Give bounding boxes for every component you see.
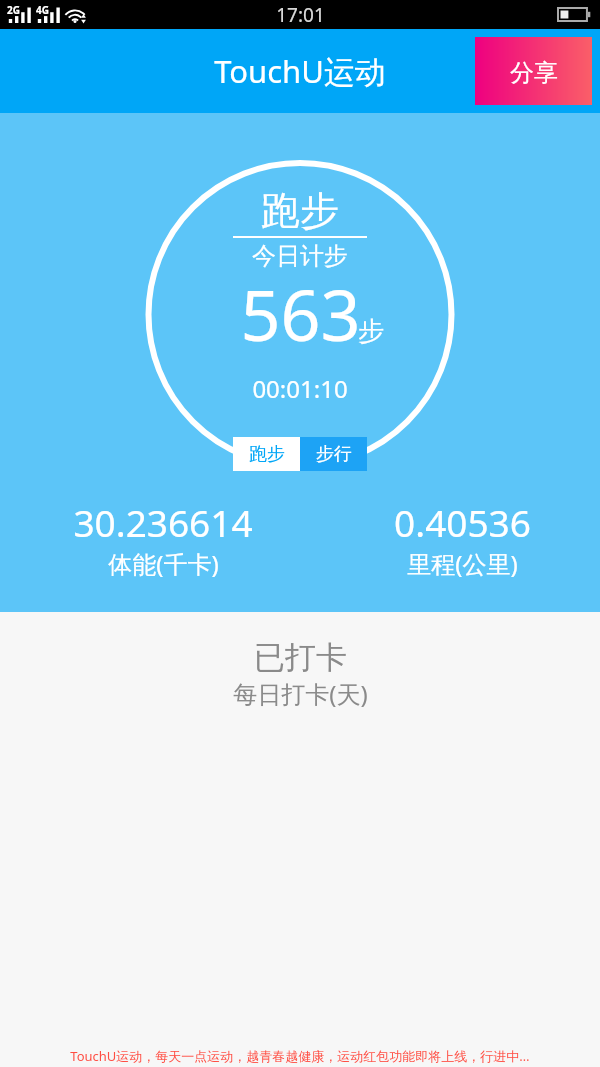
staticText: 563 (240, 266, 361, 361)
button[interactable]: 分享 (475, 37, 592, 105)
staticText: TouchU运动，每天一点运动，越青春越健康，运动红包功能即将上线，行进中… (0, 1047, 600, 1065)
staticText: TouchU运动 (214, 50, 386, 92)
staticText: 00:01:10 (252, 372, 348, 405)
button[interactable]: 跑步 (233, 437, 300, 471)
other: Wi-Fi connected (64, 4, 92, 25)
other: 2G signal strength (7, 4, 30, 25)
staticText: 已打卡 (254, 638, 347, 677)
staticText: 30.236614 (73, 497, 253, 547)
staticText: 4G (36, 3, 49, 17)
staticText: 分享 (510, 58, 558, 88)
staticText: 步行 (316, 443, 352, 466)
button[interactable]: 步行 (300, 437, 367, 471)
staticText: 2G (7, 3, 20, 17)
button[interactable]: 已打卡 (190, 638, 410, 710)
staticText: 17:01 (276, 2, 325, 28)
staticText: 每日打卡(天) (233, 677, 368, 710)
staticText: 体能(千卡) (108, 547, 219, 580)
staticText: 步 (358, 315, 384, 348)
staticText: 0.40536 (394, 497, 531, 547)
staticText: 里程(公里) (407, 547, 518, 580)
staticText: 跑步 (249, 443, 285, 466)
staticText: 跑步 (261, 186, 339, 235)
staticText: 今日计步 (252, 241, 348, 271)
other: Battery level (557, 7, 591, 22)
other: 4G signal strength (36, 4, 59, 25)
